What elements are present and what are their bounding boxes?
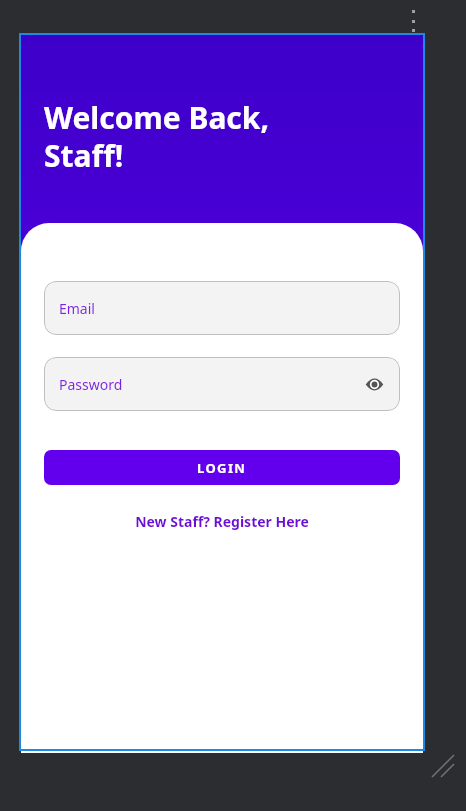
button[interactable]: Password	[44, 357, 400, 411]
button[interactable]: LOGIN	[44, 450, 400, 485]
staticText: LOGIN	[197, 459, 247, 477]
staticText: Welcome Back, Staff!	[44, 97, 269, 176]
button[interactable]: New Staff? Register Here	[44, 508, 400, 534]
staticText: New Staff? Register Here	[135, 512, 309, 531]
button[interactable]: More options	[408, 10, 418, 32]
button[interactable]: Show password	[362, 372, 386, 396]
staticText: Email	[59, 299, 95, 318]
staticText: Password	[59, 375, 123, 394]
button[interactable]: Email	[44, 281, 400, 335]
